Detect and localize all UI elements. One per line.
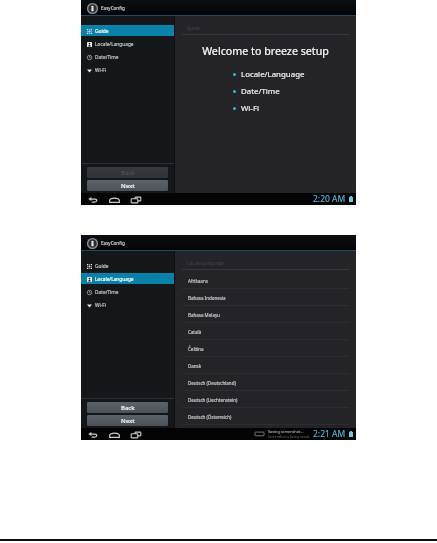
button[interactable]: Afrikaans	[175, 272, 356, 289]
staticText: Next	[121, 417, 135, 425]
button[interactable]: Deutsch (Liechtenstein)	[175, 391, 356, 408]
staticText: EasyConfig	[101, 240, 125, 246]
staticText: Bahasa Indonesia	[188, 295, 226, 301]
staticText: Back	[121, 404, 135, 412]
button[interactable]: Back	[87, 167, 168, 178]
staticText: Wi-Fi	[241, 103, 260, 114]
staticText: Locale/Language	[95, 276, 134, 283]
staticText: Date/Time	[241, 86, 280, 97]
button[interactable]: Català	[175, 323, 356, 340]
staticText: Guide	[95, 263, 109, 270]
button[interactable]: Date/Time	[81, 51, 174, 64]
staticText: 2:21 AM	[313, 428, 346, 440]
staticText: Afrikaans	[188, 278, 208, 284]
staticText: Deutsch (Liechtenstein)	[188, 397, 238, 403]
button[interactable]: Home	[109, 197, 120, 203]
button[interactable]: Recent apps	[131, 197, 141, 203]
staticText: Saving screenshot...	[268, 429, 304, 434]
staticText: Deutsch (Deutschland)	[188, 380, 236, 386]
button[interactable]: Date/Time	[81, 286, 174, 299]
staticText: Guide	[187, 25, 200, 31]
staticText: Dansk	[188, 363, 202, 369]
button[interactable]: Locale/Language	[81, 273, 174, 286]
button[interactable]: Back	[87, 402, 168, 413]
button[interactable]: Back	[88, 432, 98, 438]
button[interactable]: Deutsch (Deutschland)	[175, 374, 356, 391]
staticText: Čeština	[188, 346, 204, 352]
staticText: Date/Time	[95, 289, 119, 296]
button[interactable]: Recent apps	[131, 432, 141, 438]
staticText: Back	[121, 169, 135, 177]
button[interactable]: Dansk	[175, 357, 356, 374]
staticText: Locale/Language	[95, 41, 134, 48]
staticText: Català	[188, 329, 202, 335]
staticText: Guide	[95, 28, 109, 35]
staticText: Locale/Language	[241, 69, 305, 80]
button[interactable]: Next	[87, 415, 168, 426]
button[interactable]: Wi-Fi	[81, 64, 174, 77]
staticText: Deutsch (Österreich)	[188, 414, 232, 420]
staticText: Welcome to breeze setup	[175, 44, 356, 59]
staticText: 2:20 AM	[313, 193, 346, 205]
button[interactable]: Locale/Language	[81, 38, 174, 51]
button[interactable]: Next	[87, 180, 168, 191]
staticText: Wi-Fi	[95, 67, 106, 74]
staticText: Screenshot is being saved.	[268, 434, 311, 439]
staticText: Bahasa Melayu	[188, 312, 220, 318]
staticText: EasyConfig	[101, 5, 125, 11]
button[interactable]: Čeština	[175, 340, 356, 357]
staticText: Next	[121, 182, 135, 190]
button[interactable]: Wi-Fi	[81, 299, 174, 312]
staticText: Wi-Fi	[95, 302, 106, 309]
button[interactable]: Home	[109, 432, 120, 438]
button[interactable]: Back	[88, 197, 98, 203]
staticText: Locale/Language	[187, 260, 224, 266]
button[interactable]: Deutsch (Österreich)	[175, 408, 356, 425]
button[interactable]: Bahasa Melayu	[175, 306, 356, 323]
button[interactable]: Guide	[81, 260, 174, 273]
button[interactable]: Bahasa Indonesia	[175, 289, 356, 306]
staticText: Date/Time	[95, 54, 119, 61]
button[interactable]: Guide	[81, 25, 174, 38]
